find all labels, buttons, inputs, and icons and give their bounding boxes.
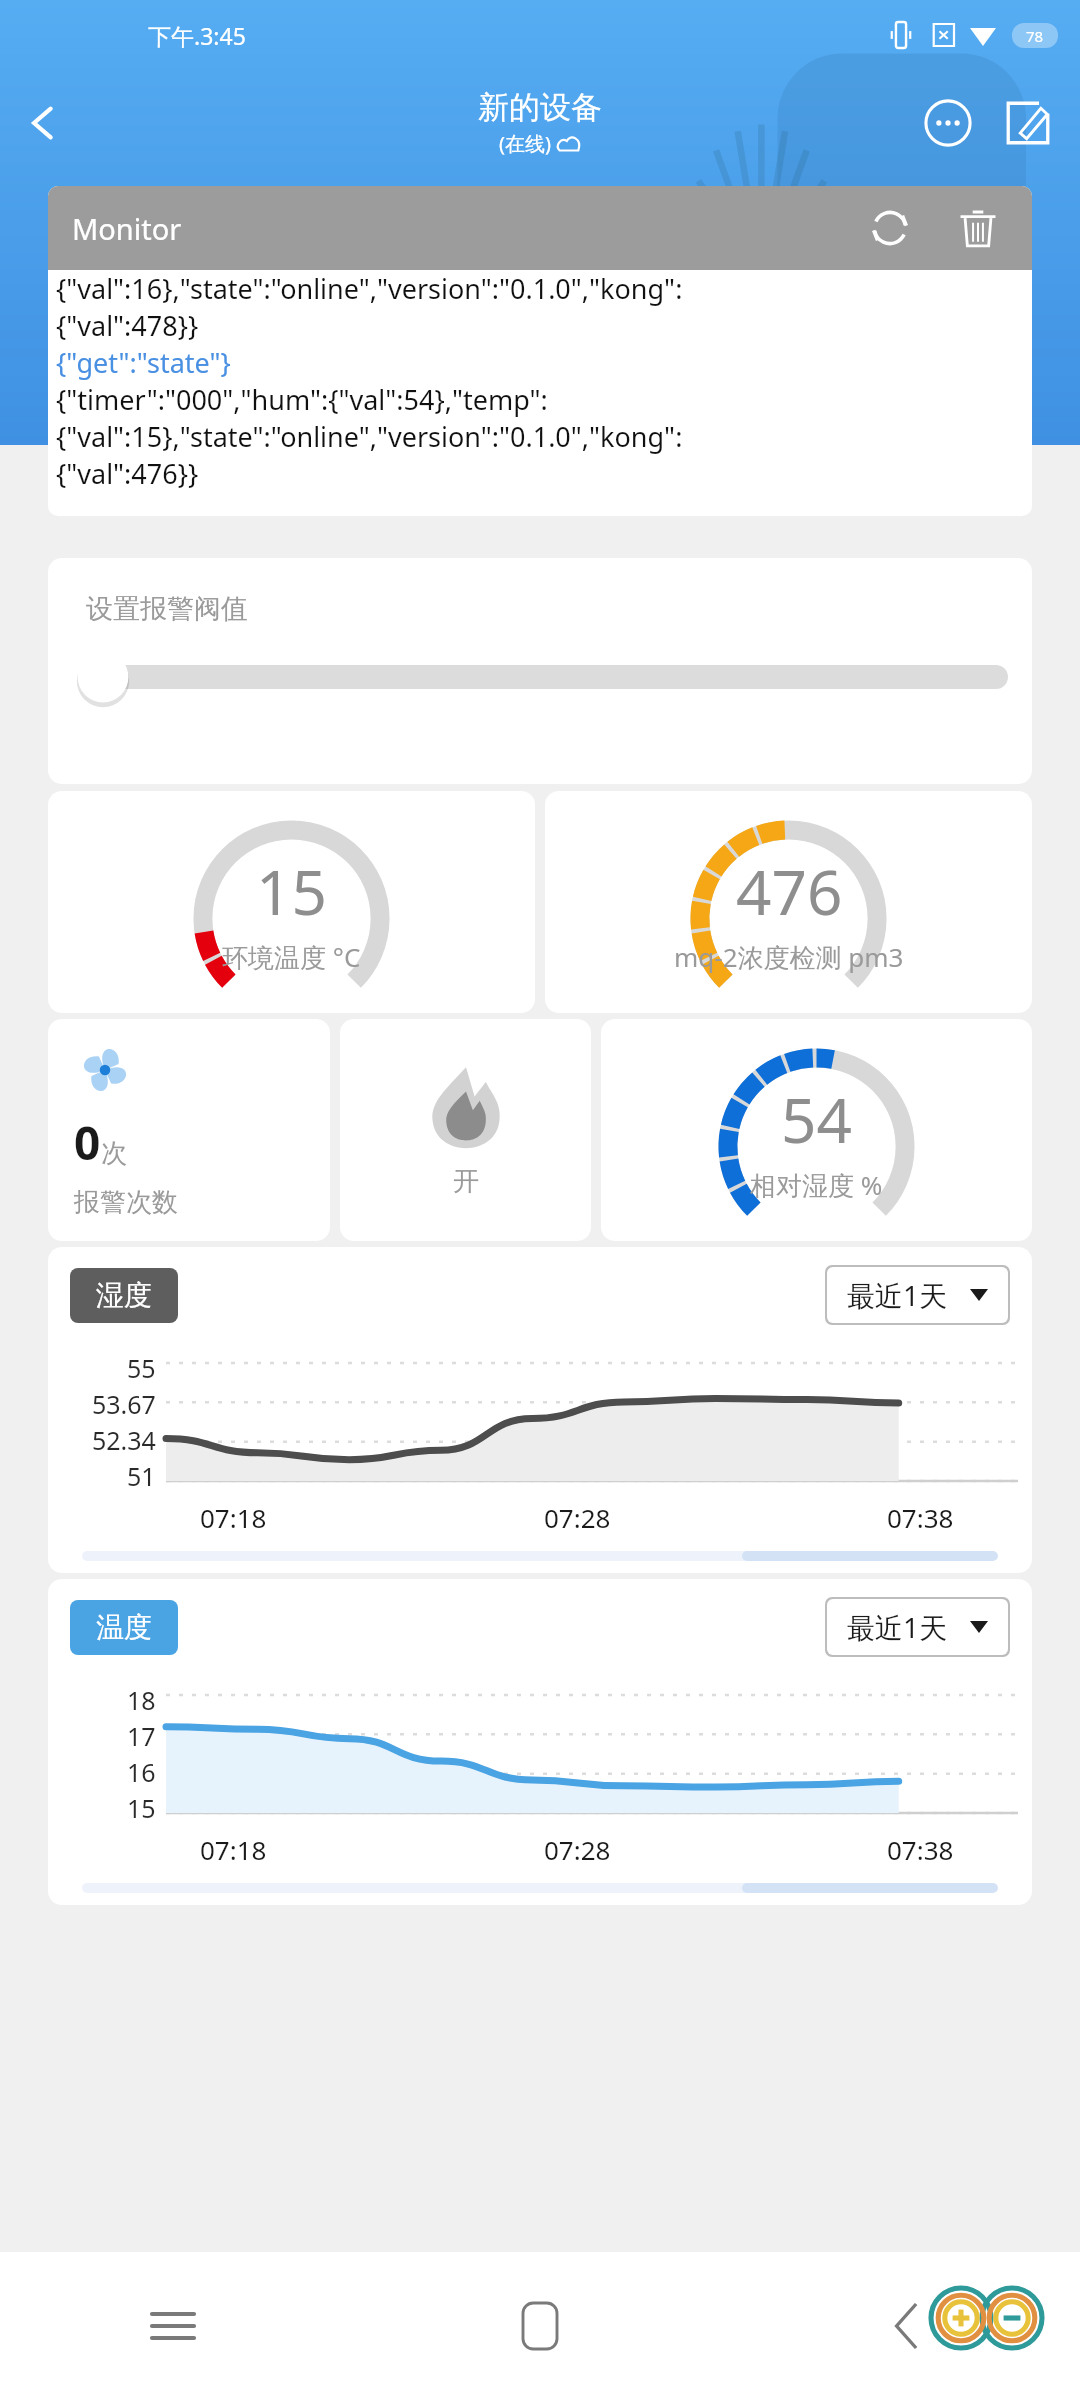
staticText: 报警次数 xyxy=(74,1186,178,1219)
staticText: 环境温度 °C xyxy=(222,939,361,975)
staticText: 07:18 xyxy=(200,1500,267,1535)
button[interactable]: More options xyxy=(912,87,984,159)
staticText: 78 xyxy=(1026,26,1044,46)
staticText: 16 xyxy=(127,1755,156,1789)
button[interactable]: 0 xyxy=(48,1019,330,1241)
staticText: 0 xyxy=(74,1111,101,1174)
button[interactable]: 476 xyxy=(545,791,1032,1013)
staticText: 湿度 xyxy=(96,1278,152,1313)
staticText: 最近1天 xyxy=(847,1608,948,1646)
staticText: 开 xyxy=(453,1165,479,1198)
button[interactable]: Edit xyxy=(992,87,1064,159)
staticText: 温度 xyxy=(96,1610,152,1645)
staticText: 07:28 xyxy=(544,1500,611,1535)
button[interactable]: 54 xyxy=(601,1019,1032,1241)
staticText: 54 xyxy=(781,1077,852,1161)
staticText: 51 xyxy=(127,1459,156,1493)
button[interactable]: 15 xyxy=(48,791,535,1013)
staticText: Monitor xyxy=(72,209,182,248)
button[interactable]: Back xyxy=(10,90,76,156)
staticText: 07:28 xyxy=(544,1832,611,1867)
staticText: 设置报警阀值 xyxy=(86,592,248,626)
staticText: {"val":476}} xyxy=(56,455,199,492)
staticText: 07:38 xyxy=(887,1832,954,1867)
staticText: (在线) xyxy=(499,130,551,157)
button[interactable]: Home xyxy=(485,2271,595,2381)
staticText: {"timer":"000","hum":{"val":54},"temp": xyxy=(56,381,548,418)
staticText: 15 xyxy=(127,1791,156,1825)
staticText: 52.34 xyxy=(92,1423,156,1457)
button[interactable]: 温度 xyxy=(70,1600,178,1655)
staticText: {"val":15},"state":"online","version":"0… xyxy=(56,418,683,455)
staticText: 17 xyxy=(127,1719,156,1753)
button[interactable]: Delete xyxy=(948,198,1008,258)
staticText: mq-2浓度检测 pm3 xyxy=(674,939,904,975)
button[interactable]: Back xyxy=(852,2271,962,2381)
staticText: 07:38 xyxy=(887,1500,954,1535)
staticText: 55 xyxy=(127,1351,156,1385)
button[interactable]: Refresh xyxy=(860,198,920,258)
button[interactable]: 设置报警阀值 xyxy=(48,558,1032,784)
staticText: 最近1天 xyxy=(847,1276,948,1314)
staticText: 53.67 xyxy=(92,1387,156,1421)
staticText: 下午.3:45 xyxy=(148,20,246,51)
staticText: {"get":"state"} xyxy=(56,344,231,381)
staticText: 07:18 xyxy=(200,1832,267,1867)
staticText: 次 xyxy=(101,1137,127,1170)
staticText: {"val":16},"state":"online","version":"0… xyxy=(56,270,683,307)
button[interactable]: Recents xyxy=(118,2271,228,2381)
button[interactable]: 开 xyxy=(340,1019,591,1241)
button[interactable]: 湿度 xyxy=(70,1268,178,1323)
staticText: 相对湿度 % xyxy=(750,1167,883,1203)
button[interactable]: 最近1天 xyxy=(827,1599,1008,1655)
button[interactable]: 最近1天 xyxy=(827,1267,1008,1323)
staticText: 476 xyxy=(736,849,843,933)
staticText: 15 xyxy=(256,849,327,933)
staticText: 新的设备 xyxy=(478,88,602,127)
staticText: 18 xyxy=(127,1683,156,1717)
staticText: {"val":478}} xyxy=(56,307,199,344)
